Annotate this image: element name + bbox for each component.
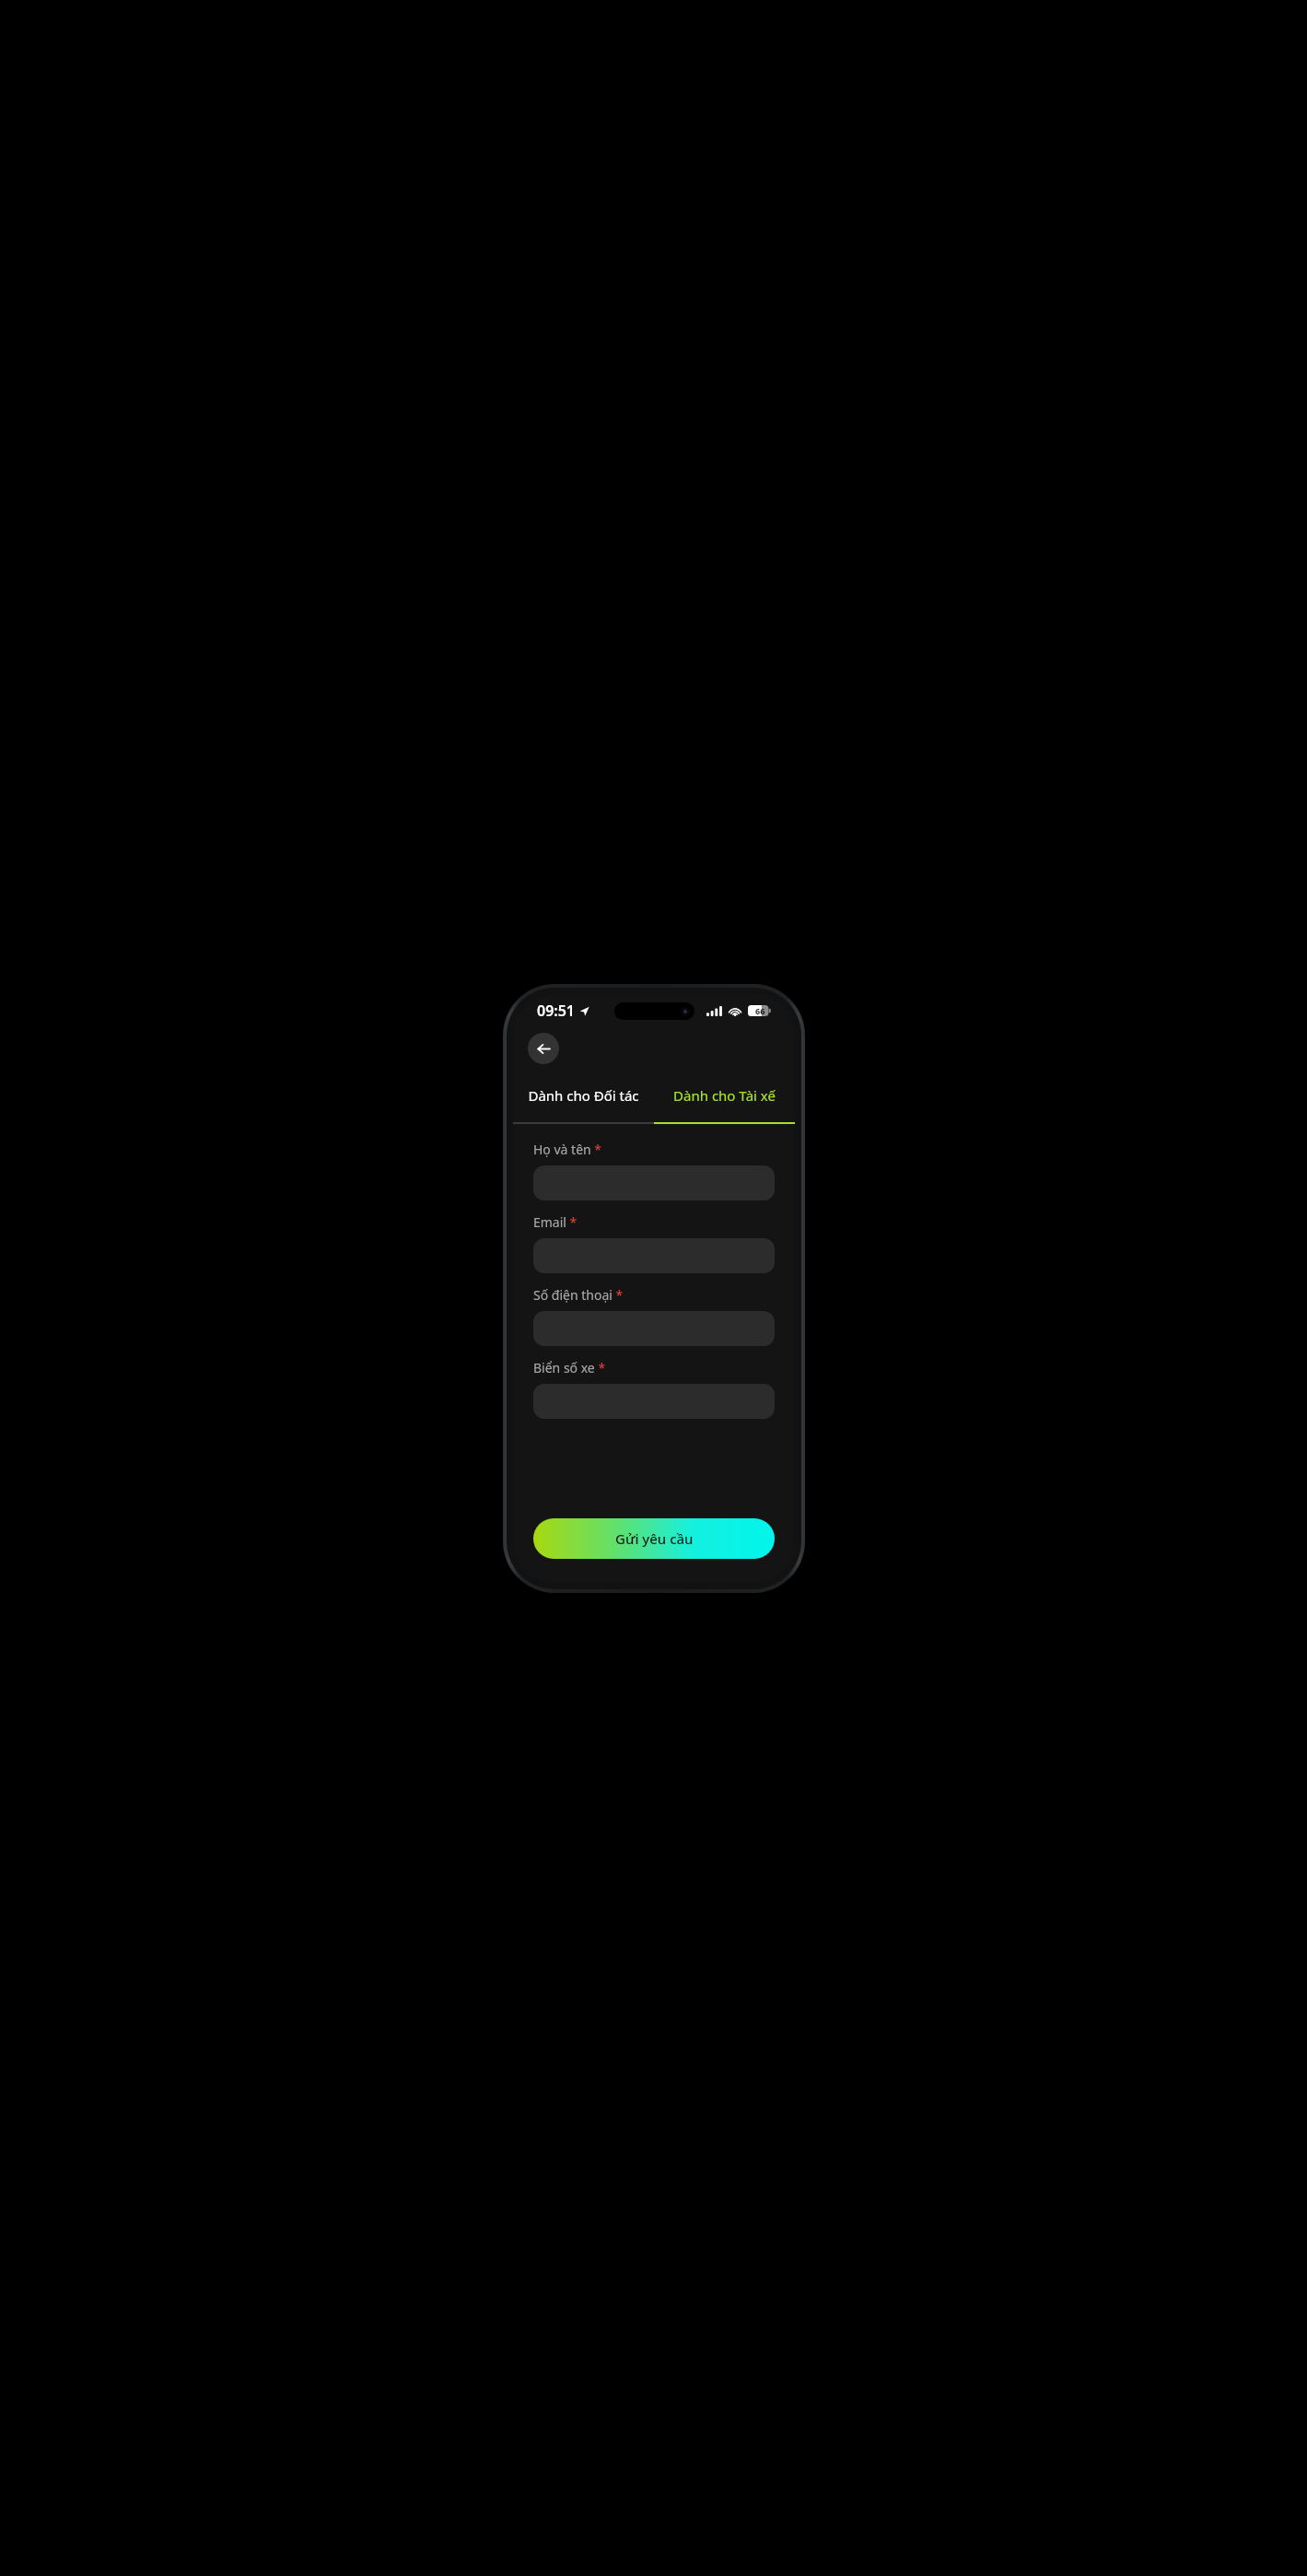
staticText: Gửi yêu cầu [615, 1529, 694, 1548]
button[interactable]: Back [528, 1033, 559, 1064]
staticText: Dành cho Tài xế [673, 1086, 776, 1105]
staticText: Họ và tên * [533, 1141, 602, 1158]
staticText: Dành cho Đối tác [528, 1086, 639, 1105]
staticText: Số điện thoại * [533, 1286, 624, 1304]
button[interactable]: Dành cho Đối tác [513, 1077, 654, 1114]
staticText: 09:51 [537, 1001, 576, 1021]
button[interactable] [533, 1238, 775, 1273]
button[interactable] [533, 1165, 775, 1200]
button[interactable] [533, 1311, 775, 1346]
staticText: Email * [533, 1213, 578, 1231]
button[interactable]: Gửi yêu cầu [533, 1518, 775, 1559]
button[interactable]: Dành cho Tài xế [654, 1077, 795, 1114]
staticText: Biển số xe * [533, 1359, 606, 1376]
staticText: 66 [755, 1005, 765, 1016]
